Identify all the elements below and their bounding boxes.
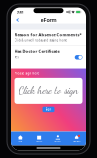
staticText: Calendar	[36, 140, 43, 142]
staticText: Please sign here	[14, 72, 39, 75]
button[interactable]: Directory	[48, 131, 67, 145]
staticText: Sign	[45, 108, 51, 111]
staticText: Yes	[14, 55, 18, 59]
button[interactable]: Back	[11, 16, 22, 23]
staticText: Notifications	[73, 140, 81, 142]
staticText: Click here to sign	[18, 85, 78, 97]
staticText: Home	[18, 140, 22, 142]
staticText: Reason for Absence Comments*	[14, 32, 81, 37]
button[interactable]: Home	[11, 131, 30, 145]
staticText: Click & unwell today and staying home	[14, 39, 67, 42]
staticText: 9:41	[16, 9, 23, 15]
button[interactable]: Has doctor certificate	[75, 55, 82, 60]
staticText: Has Doctor Certificate	[14, 49, 59, 54]
button[interactable]: Sign	[42, 107, 54, 112]
staticText: eForm	[40, 16, 56, 24]
button[interactable]: Calendar	[30, 131, 49, 145]
button[interactable]: Notifications	[67, 131, 86, 145]
staticText: Directory	[54, 140, 61, 142]
